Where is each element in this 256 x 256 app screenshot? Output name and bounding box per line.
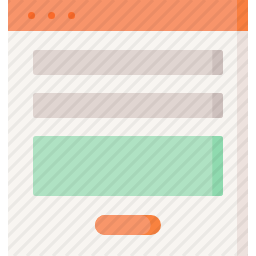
button[interactable]: Close window [28, 12, 35, 19]
button[interactable]: Maximise window [68, 12, 75, 19]
button[interactable]: Submit [95, 215, 161, 235]
button[interactable]: Minimise window [48, 12, 55, 19]
button[interactable] [33, 93, 223, 118]
button[interactable] [33, 50, 223, 75]
button[interactable] [33, 136, 223, 196]
